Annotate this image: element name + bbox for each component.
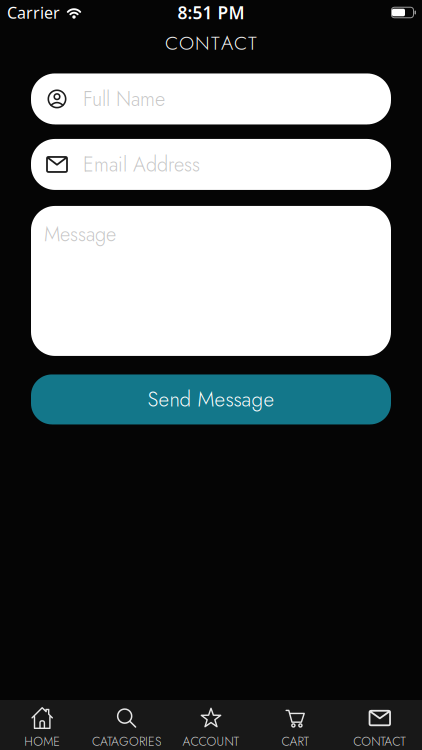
button[interactable]: HOME <box>0 699 84 750</box>
staticText: Message <box>44 220 116 249</box>
button[interactable]: CART <box>253 699 338 750</box>
button[interactable]: Email Address <box>31 139 391 190</box>
button[interactable]: Send Message <box>31 374 391 424</box>
button[interactable]: CATAGORIES <box>84 699 169 750</box>
staticText: HOME <box>24 732 60 750</box>
button[interactable]: Full Name <box>31 73 391 124</box>
button[interactable]: CONTACT <box>338 699 422 750</box>
staticText: Send Message <box>147 384 274 414</box>
staticText: CART <box>281 732 309 750</box>
staticText: CONTACT <box>353 732 406 750</box>
staticText: CATAGORIES <box>92 732 161 750</box>
button[interactable]: ACCOUNT <box>169 699 253 750</box>
button[interactable]: Message <box>31 206 391 356</box>
staticText: 8:51 PM <box>177 1 244 24</box>
staticText: C O N T A C T <box>165 29 257 57</box>
staticText: ACCOUNT <box>182 732 239 750</box>
staticText: Full Name <box>83 84 165 113</box>
staticText: Email Address <box>83 150 200 179</box>
staticText: Carrier <box>7 2 60 23</box>
